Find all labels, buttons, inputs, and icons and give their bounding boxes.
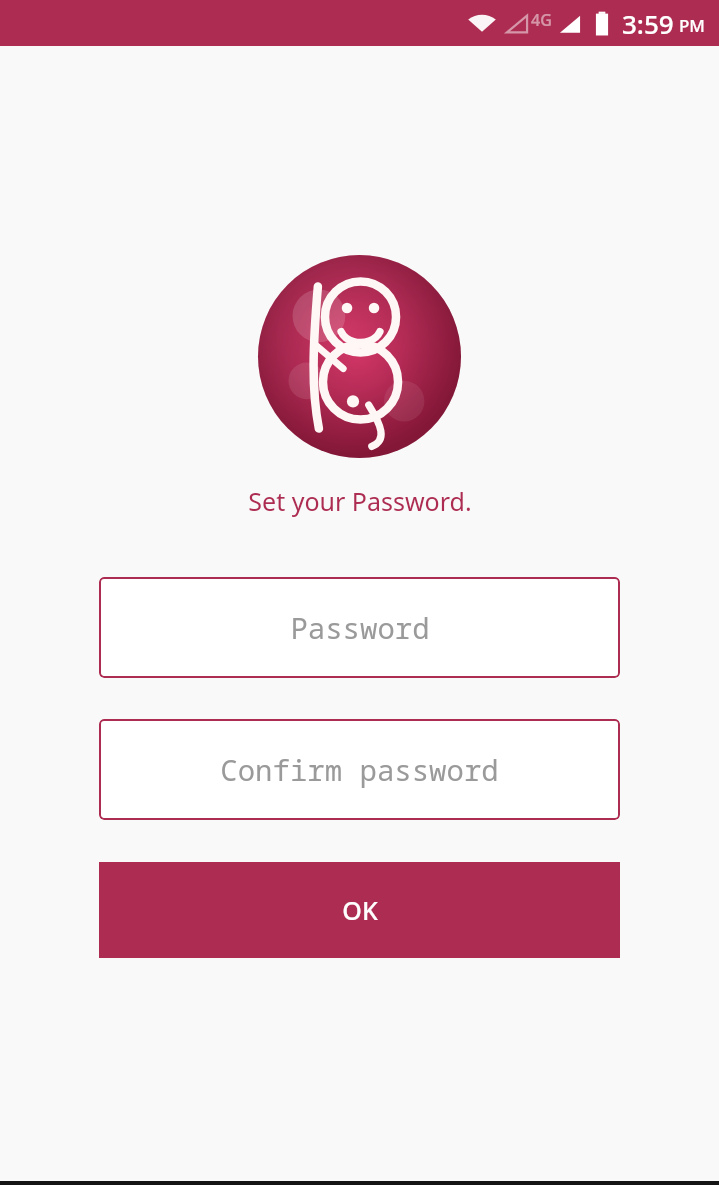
staticText: Password [290,608,430,647]
button[interactable]: Confirm password [99,719,620,820]
button[interactable]: OK [99,862,620,958]
button[interactable]: Password [99,577,620,678]
staticText: PM [679,14,705,37]
staticText: 3:59 [622,6,674,41]
staticText: 4G [531,9,552,31]
staticText: OK [342,893,378,927]
staticText: Set your Password. [248,484,472,518]
staticText: Confirm password [220,750,499,789]
